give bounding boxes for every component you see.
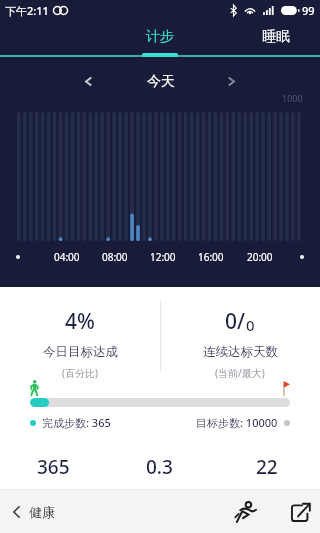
button[interactable]: 365: [0, 454, 106, 502]
staticText: 04:00: [54, 250, 80, 264]
staticText: 计步: [42, 488, 64, 502]
staticText: 12:00: [150, 250, 176, 264]
staticText: 99: [302, 3, 315, 18]
button[interactable]: Start workout: [229, 495, 263, 529]
button[interactable]: 4%: [0, 287, 160, 380]
button[interactable]: 22: [213, 454, 320, 502]
staticText: 0: [246, 315, 255, 335]
staticText: 连续达标天数: [203, 344, 278, 360]
button[interactable]: 健康: [0, 496, 65, 528]
staticText: 4%: [65, 307, 95, 336]
staticText: 距离: [149, 488, 171, 502]
button[interactable]: 0.3: [106, 454, 213, 502]
staticText: 卡路里: [250, 488, 283, 502]
staticText: 完成步数: 365: [42, 415, 111, 430]
button[interactable]: Previous day: [72, 65, 104, 97]
staticText: 今日目标达成: [43, 344, 118, 360]
staticText: 1000: [282, 92, 303, 104]
button[interactable]: 睡眠: [232, 20, 320, 53]
staticText: 22: [256, 454, 278, 480]
button[interactable]: Next day: [215, 65, 247, 97]
button[interactable]: 计步: [116, 20, 204, 53]
staticText: 20:00: [247, 250, 273, 264]
staticText: 目标步数: 10000: [196, 415, 278, 430]
staticText: 365: [37, 454, 70, 480]
staticText: 08:00: [102, 250, 128, 264]
staticText: 计步: [146, 28, 174, 46]
staticText: 16:00: [198, 250, 224, 264]
staticText: 睡眠: [262, 28, 290, 46]
staticText: 0/: [225, 307, 246, 336]
button[interactable]: Open in browser: [285, 496, 317, 528]
staticText: 0.3: [146, 454, 173, 480]
button[interactable]: 今天: [135, 65, 187, 97]
button[interactable]: 0/: [160, 287, 320, 380]
staticText: (百分比): [62, 366, 98, 380]
staticText: (当前/最大): [215, 366, 265, 380]
staticText: 健康: [29, 504, 55, 520]
staticText: 下午2:11: [5, 3, 49, 18]
